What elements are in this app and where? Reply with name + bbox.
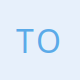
button[interactable]: TO profile monogram	[0, 0, 80, 80]
staticText: TO	[16, 19, 61, 62]
